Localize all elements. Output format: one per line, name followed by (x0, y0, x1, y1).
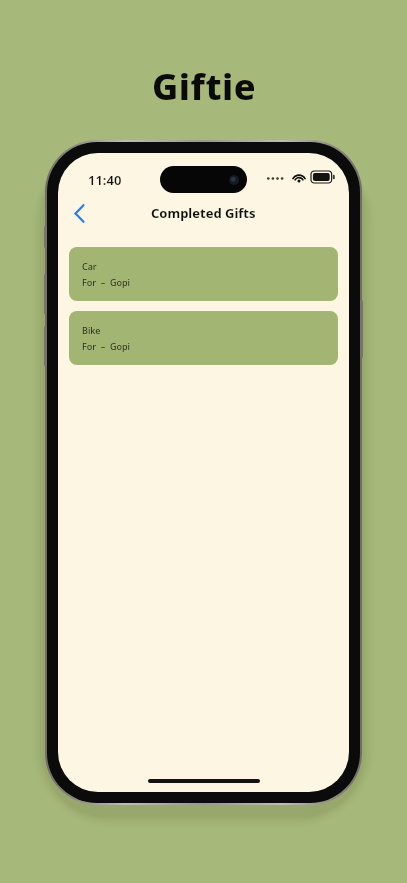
button[interactable]: Car (69, 247, 338, 301)
staticText: Giftie (152, 62, 256, 111)
staticText: For – Gopi (82, 276, 130, 288)
button[interactable]: Bike (69, 311, 338, 365)
staticText: 11:40 (88, 171, 122, 189)
staticText: Completed Gifts (151, 204, 256, 222)
staticText: Car (82, 260, 97, 272)
button[interactable]: Back (62, 196, 96, 230)
staticText: Bike (82, 324, 101, 336)
staticText: For – Gopi (82, 340, 130, 352)
